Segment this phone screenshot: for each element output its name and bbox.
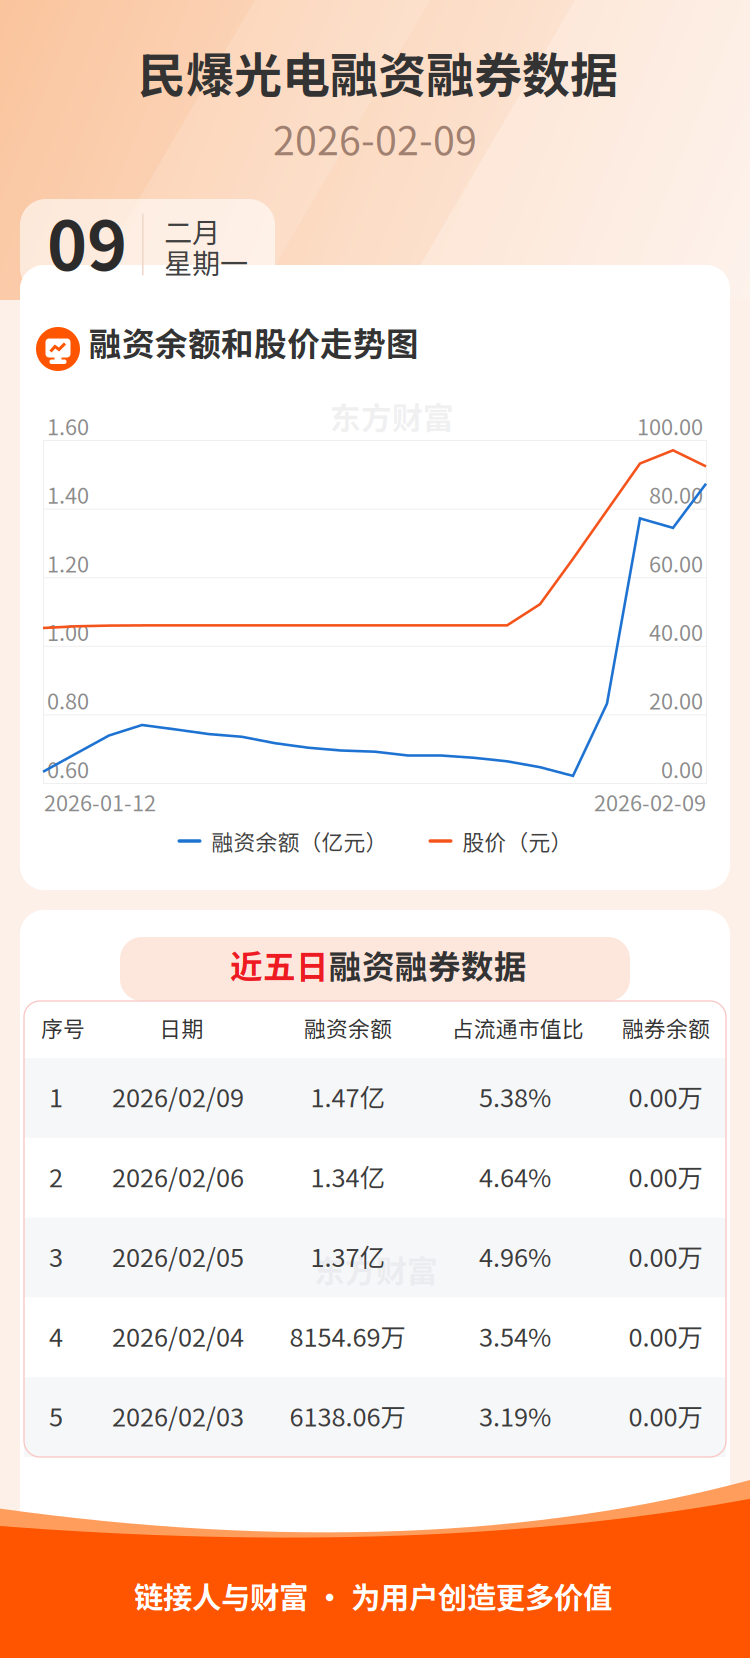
staticText: 3.19% <box>479 1397 551 1434</box>
staticText: 6138.06万 <box>289 1397 405 1434</box>
staticText: 3 <box>49 1237 63 1274</box>
staticText: 占流通市值比 <box>452 1012 584 1043</box>
staticText: 1.60 <box>47 410 89 441</box>
staticText: 东方财富 <box>314 1247 438 1291</box>
staticText: 0.80 <box>47 684 89 716</box>
staticText: 近五日 <box>230 941 329 988</box>
staticText: 4.64% <box>479 1158 551 1194</box>
staticText: 融资余额（亿元） <box>211 825 387 857</box>
staticText: 2 <box>49 1158 63 1194</box>
staticText: 2026-02-09 <box>594 786 706 817</box>
staticText: 4 <box>49 1317 63 1354</box>
staticText: 1.34亿 <box>310 1158 384 1194</box>
staticText: 2026-02-09 <box>273 109 477 166</box>
staticText: 5 <box>49 1397 63 1434</box>
staticText: 0.00万 <box>628 1158 702 1194</box>
staticText: 0.00 <box>661 753 703 784</box>
staticText: 0.00万 <box>628 1078 702 1115</box>
staticText: 1.37亿 <box>310 1237 384 1274</box>
staticText: 0.00万 <box>628 1397 702 1434</box>
staticText: 2026/02/09 <box>112 1078 244 1115</box>
staticText: 股价（元） <box>462 825 572 857</box>
staticText: 2026-01-12 <box>44 786 156 817</box>
staticText: 融券余额 <box>622 1012 710 1043</box>
staticText: 5.38% <box>479 1078 551 1115</box>
staticText: 1.40 <box>47 479 89 510</box>
staticText: 2026/02/05 <box>112 1237 244 1274</box>
staticText: 星期一 <box>164 242 248 282</box>
staticText: 09 <box>47 191 127 290</box>
staticText: 40.00 <box>649 616 703 647</box>
staticText: 0.00万 <box>628 1237 702 1274</box>
staticText: 80.00 <box>649 479 703 510</box>
staticText: 3.54% <box>479 1317 551 1354</box>
staticText: 2026/02/06 <box>112 1158 244 1194</box>
staticText: 20.00 <box>649 684 703 716</box>
staticText: 融资余额 <box>304 1012 392 1043</box>
staticText: 1.20 <box>47 547 89 579</box>
staticText: 2026/02/03 <box>112 1397 244 1434</box>
staticText: 1.00 <box>47 616 89 647</box>
staticText: 日期 <box>159 1012 203 1043</box>
staticText: 二月 <box>164 210 220 251</box>
staticText: 民爆光电融资融券数据 <box>138 37 618 107</box>
staticText: 2026/02/04 <box>112 1317 244 1354</box>
staticText: 东方财富 <box>330 394 454 438</box>
staticText: 0.60 <box>47 753 89 784</box>
staticText: 序号 <box>41 1012 85 1043</box>
staticText: 链接人与财富 · 为用户创造更多价值 <box>134 1574 612 1617</box>
staticText: 8154.69万 <box>289 1317 405 1354</box>
staticText: 4.96% <box>479 1237 551 1274</box>
staticText: 融资余额和股价走势图 <box>89 318 419 365</box>
staticText: 融资融券数据 <box>329 941 527 988</box>
staticText: 1.47亿 <box>310 1078 384 1115</box>
staticText: 100.00 <box>637 410 703 441</box>
staticText: 1 <box>49 1078 63 1115</box>
staticText: 0.00万 <box>628 1317 702 1354</box>
staticText: 60.00 <box>649 547 703 579</box>
